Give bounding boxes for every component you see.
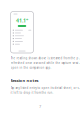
staticText: 41.1° [16,17,28,24]
staticText: refreshed once a second while the captur… [10,61,80,65]
staticText: Tap any listed entry to open its detail … [10,86,80,90]
staticText: The reading shown above is streamed from… [10,56,80,60]
staticText: it left to drop it from the run. [10,91,53,94]
staticText: open in the companion app. [10,66,51,69]
staticText: 7 [39,104,41,109]
staticText: Session notes [10,78,38,83]
